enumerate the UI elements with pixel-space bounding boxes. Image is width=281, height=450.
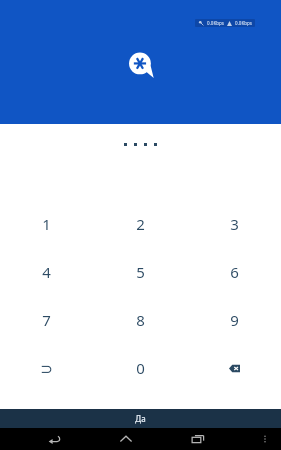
button[interactable]: 3 — [187, 200, 281, 248]
staticText: 0 — [136, 358, 145, 378]
button[interactable]: More options — [253, 428, 277, 450]
staticText: 1 — [42, 214, 51, 234]
button[interactable]: 9 — [187, 296, 281, 344]
button[interactable]: Back — [37, 428, 71, 450]
button[interactable]: 4 — [0, 248, 93, 296]
staticText: 8 — [136, 310, 145, 330]
staticText: 3 — [230, 214, 239, 234]
button[interactable]: 8 — [93, 296, 187, 344]
staticText: 0.0Kbps — [207, 20, 224, 26]
button[interactable]: 5 — [93, 248, 187, 296]
button[interactable]: 7 — [0, 296, 93, 344]
button[interactable]: 2 — [93, 200, 187, 248]
button[interactable]: 0 — [93, 344, 187, 392]
button[interactable]: Да — [0, 409, 281, 428]
button[interactable]: Backspace — [187, 344, 281, 392]
button[interactable]: 1 — [0, 200, 93, 248]
staticText: 7 — [42, 310, 51, 330]
button[interactable]: ⊃ — [0, 344, 93, 392]
staticText: 6 — [230, 262, 239, 282]
staticText: ⊃ — [40, 360, 53, 377]
staticText: 2 — [136, 214, 145, 234]
staticText: Да — [135, 413, 146, 424]
staticText: 9 — [230, 310, 239, 330]
staticText: 4 — [42, 262, 51, 282]
button[interactable]: 6 — [187, 248, 281, 296]
button[interactable]: Recent apps — [181, 428, 215, 450]
button[interactable]: Home — [109, 428, 143, 450]
staticText: 0.0Kbps — [235, 20, 252, 26]
staticText: 5 — [136, 262, 145, 282]
